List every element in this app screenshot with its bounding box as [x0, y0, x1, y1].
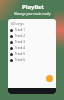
staticText: Track 4 [15, 46, 25, 50]
button[interactable]: Add [46, 75, 53, 82]
staticText: Track 5 [15, 52, 25, 56]
staticText: Track 6 [15, 58, 25, 62]
staticText: Track 2 [15, 34, 25, 38]
staticText: Manage your music easily [14, 12, 51, 16]
button[interactable]: Track 5 [8, 51, 56, 57]
button[interactable]: Track 6 [8, 57, 56, 63]
button[interactable]: Track 3 [8, 39, 56, 45]
staticText: All songs [11, 22, 24, 26]
button[interactable]: Track 4 [8, 45, 56, 51]
staticText: Playlist [22, 3, 44, 11]
button[interactable]: Track 2 [8, 33, 56, 39]
staticText: Track 3 [15, 40, 25, 44]
staticText: Track 1 [15, 28, 25, 32]
button[interactable]: Track 1 [8, 27, 56, 33]
